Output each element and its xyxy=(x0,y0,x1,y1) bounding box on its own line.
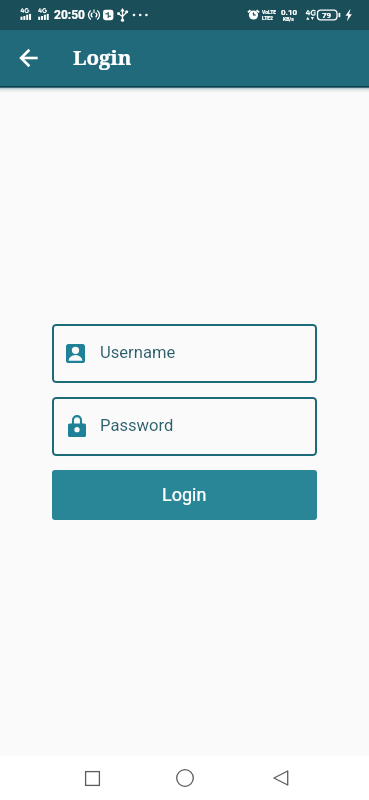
staticText: Username xyxy=(100,343,176,362)
staticText: LTE2 xyxy=(262,15,273,21)
staticText: Password xyxy=(100,416,174,435)
staticText: KB/s xyxy=(283,16,294,22)
staticText: 79 xyxy=(322,11,332,20)
button[interactable]: Login xyxy=(52,470,317,520)
button[interactable]: Home xyxy=(165,758,205,798)
button[interactable]: Back xyxy=(261,758,301,798)
button[interactable]: Back xyxy=(9,38,49,78)
button[interactable]: Recents xyxy=(72,758,112,798)
staticText: 20:50 xyxy=(54,8,85,22)
staticText: Login xyxy=(73,43,132,71)
staticText: Login xyxy=(162,484,207,505)
staticText: 0.10 xyxy=(281,8,298,17)
button[interactable]: Username xyxy=(52,324,317,383)
button[interactable]: Password xyxy=(52,397,317,456)
staticText: VoLTE xyxy=(262,9,277,15)
